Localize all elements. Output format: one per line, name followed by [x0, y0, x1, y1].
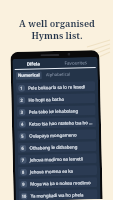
button[interactable]: Alphabetical [45, 71, 72, 79]
button[interactable]: 6 [17, 141, 97, 153]
button[interactable]: 8 [18, 165, 97, 177]
staticText: 3 [21, 110, 24, 115]
staticText: Oulapaya mongameno [29, 131, 77, 139]
staticText: Numerical [18, 72, 40, 79]
staticText: Moya wa ka o nokea modimo [30, 179, 91, 187]
button[interactable]: 7 [18, 153, 97, 165]
button[interactable]: Difela [12, 58, 55, 69]
staticText: Jehova modimo ea lemetli [30, 155, 84, 163]
staticText: Pele bokoarla sa lo re lesedi [28, 83, 86, 91]
staticText: 8 [22, 170, 25, 175]
staticText: Hymns list. [31, 29, 83, 41]
staticText: 4 [21, 122, 24, 127]
staticText: 10 [21, 194, 27, 199]
button[interactable]: Numerical [16, 71, 42, 80]
staticText: Ya mongkadi wa ho phela [30, 191, 84, 199]
staticText: Othabang le dithabeng [29, 143, 77, 151]
staticText: Jehova morena ea ka [30, 168, 73, 175]
button[interactable]: 1 [16, 81, 95, 93]
staticText: 5 [21, 134, 24, 139]
staticText: 6 [21, 146, 25, 151]
staticText: Ho hopi ea batho [28, 96, 64, 103]
button[interactable]: 5 [17, 129, 96, 141]
staticText: Pela tabo ke lehabolang [29, 107, 79, 115]
staticText: 9 [22, 182, 25, 187]
button[interactable]: Favourites [54, 57, 98, 68]
staticText: 1 [20, 86, 23, 91]
staticText: Favourites [64, 59, 88, 66]
button[interactable]: 9 [18, 177, 97, 189]
staticText: A well organised [19, 17, 95, 29]
button[interactable]: 3 [17, 105, 96, 117]
staticText: 2 [20, 98, 23, 103]
staticText: Ketso tsa hao ntateho tsa ho diroka [29, 119, 94, 127]
staticText: Difela [26, 60, 41, 67]
staticText: 7 [22, 158, 25, 163]
button[interactable]: 2 [16, 93, 95, 105]
staticText: Alphabetical [46, 72, 71, 78]
button[interactable]: 4 [17, 117, 96, 129]
button[interactable]: 10 [18, 189, 98, 200]
